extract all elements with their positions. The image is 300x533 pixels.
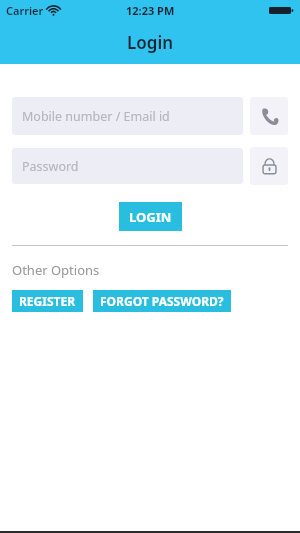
button[interactable]: Show password	[250, 147, 288, 185]
staticText: Login	[127, 31, 174, 54]
button[interactable]: Password	[12, 148, 243, 184]
button[interactable]: Call	[250, 97, 288, 135]
staticText: 12:23 PM	[126, 3, 175, 18]
staticText: Mobile number / Email id	[22, 108, 170, 125]
staticText: FORGOT PASSWORD?	[100, 293, 224, 309]
staticText: Carrier	[6, 3, 44, 18]
staticText: Password	[22, 158, 79, 175]
staticText: REGISTER	[19, 293, 76, 309]
button[interactable]: Mobile number / Email id	[12, 97, 243, 135]
button[interactable]: REGISTER	[12, 290, 83, 312]
button[interactable]: LOGIN	[119, 202, 182, 231]
staticText: Other Options	[12, 261, 100, 279]
button[interactable]: FORGOT PASSWORD?	[93, 290, 231, 312]
staticText: LOGIN	[129, 208, 172, 226]
